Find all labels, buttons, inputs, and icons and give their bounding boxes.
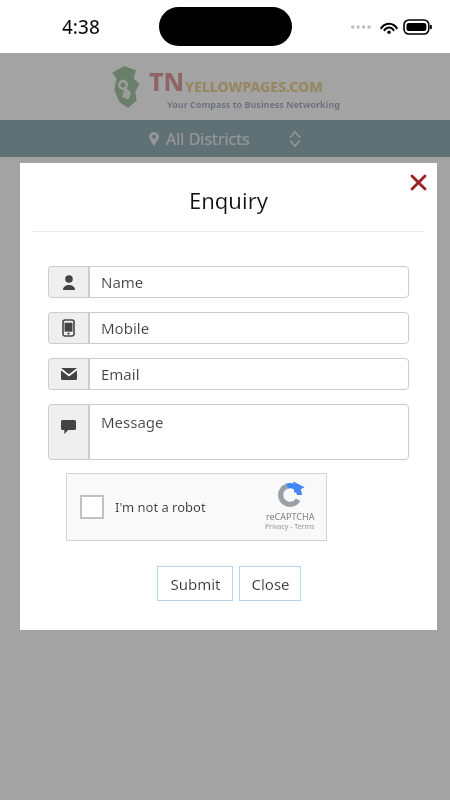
staticText: Email: [101, 364, 140, 384]
staticText: for enterprises based on their exact req…: [49, 277, 384, 295]
staticText: Submit: [170, 574, 221, 594]
staticText: Your Compass to Business Networking: [167, 98, 340, 110]
staticText: I'm not a robot: [115, 498, 206, 516]
button[interactable]: Close: [405, 169, 431, 195]
staticText: YELLOWPAGES.COM: [185, 77, 323, 96]
button[interactable]: All Districts: [0, 120, 450, 157]
staticText: Message: [101, 412, 164, 432]
button[interactable]: Close: [239, 566, 301, 601]
staticText: solutions are Internet, Intranet and Mob…: [49, 295, 358, 313]
staticText: and deliver the solution that will enabl…: [49, 187, 415, 205]
button[interactable]: Submit: [157, 566, 233, 601]
staticText: work and not worry too much about the te…: [49, 205, 415, 223]
staticText: Modern Business Solutions enables entrep…: [49, 223, 400, 241]
staticText: Privacy - Terms: [265, 522, 315, 532]
button[interactable]: Name: [48, 266, 409, 298]
staticText: reCAPTCHA: [266, 510, 315, 522]
button[interactable]: Message: [48, 404, 409, 460]
staticText: Enquiry: [189, 185, 268, 215]
staticText: Mobile: [101, 318, 150, 338]
staticText: industry, ABC Infomedia Pvt Ltd has a po…: [49, 331, 397, 349]
button[interactable]: I'm not a robot: [66, 473, 327, 541]
staticText: Close: [251, 574, 290, 594]
button[interactable]: Email: [48, 358, 409, 390]
staticText: All Districts: [166, 128, 250, 150]
staticText: 4:38: [62, 14, 100, 40]
button[interactable]: Mobile: [48, 312, 409, 344]
staticText: TN: [149, 64, 185, 98]
staticText: Name: [101, 272, 144, 292]
staticText: the web. We also offer customized softwa…: [49, 259, 399, 277]
staticText: compatible. Bringing in over a decade of…: [49, 313, 405, 331]
